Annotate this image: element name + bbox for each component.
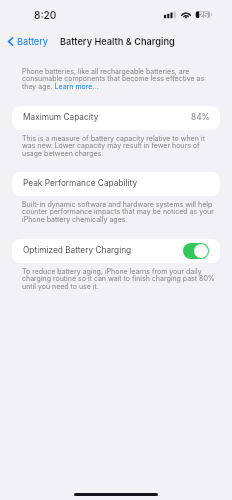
button[interactable]: Maximum Capacity xyxy=(12,106,220,130)
staticText: Battery Health & Charging xyxy=(60,36,175,47)
button[interactable]: Peak Performance Capability xyxy=(12,172,220,196)
staticText: Built-in dynamic software and hardware s… xyxy=(22,200,215,224)
staticText: Peak Performance Capability xyxy=(23,178,138,188)
button[interactable]: Optimized Battery Charging xyxy=(12,239,220,263)
staticText: 84% xyxy=(191,112,210,122)
staticText: To reduce battery aging, iPhone learns f… xyxy=(22,267,215,291)
staticText: Optimized Battery Charging xyxy=(23,245,132,255)
staticText: 25 xyxy=(199,11,209,20)
staticText: Maximum Capacity xyxy=(23,112,99,122)
button[interactable]: Optimized Battery Charging toggle, on xyxy=(183,243,209,259)
staticText: Battery xyxy=(17,36,48,47)
button[interactable]: Battery xyxy=(6,34,49,49)
staticText: This is a measure of battery capacity re… xyxy=(22,134,215,158)
staticText: 8:20 xyxy=(34,9,57,21)
staticText: Phone batteries, like all rechargeable b… xyxy=(22,67,215,91)
